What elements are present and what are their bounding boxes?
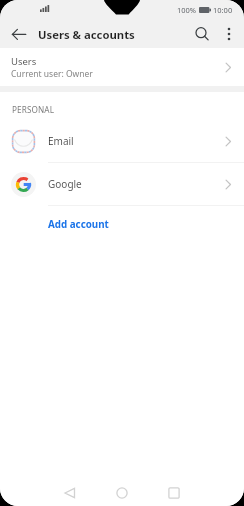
button[interactable]: More options <box>216 21 242 47</box>
staticText: Users & accounts <box>38 27 135 42</box>
staticText: Add account <box>48 218 109 231</box>
staticText: Users <box>11 55 37 68</box>
button[interactable]: Back <box>57 480 83 506</box>
button[interactable]: Home <box>109 480 135 506</box>
button[interactable]: Add account <box>48 218 109 231</box>
staticText: 10:00 <box>213 5 233 15</box>
button[interactable]: Search <box>188 20 216 48</box>
staticText: Google <box>48 177 82 191</box>
staticText: 100% <box>177 5 197 15</box>
staticText: Email <box>48 134 74 148</box>
button[interactable]: Email <box>0 120 244 162</box>
staticText: PERSONAL <box>12 104 55 115</box>
button[interactable]: Back <box>5 21 32 48</box>
button[interactable]: Recents <box>161 480 187 506</box>
button[interactable]: Google <box>0 163 244 205</box>
staticText: Current user: Owner <box>11 68 93 80</box>
button[interactable]: Users <box>0 48 244 86</box>
